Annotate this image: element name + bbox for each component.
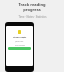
staticText: Atomic Habits [13, 36, 27, 39]
staticText: Track reading progress [18, 2, 46, 12]
staticText: 64% complete [15, 44, 25, 46]
staticText: James Clear [15, 40, 24, 42]
staticText: Time · Notes · Statistics [18, 15, 47, 19]
button[interactable] [8, 47, 31, 50]
